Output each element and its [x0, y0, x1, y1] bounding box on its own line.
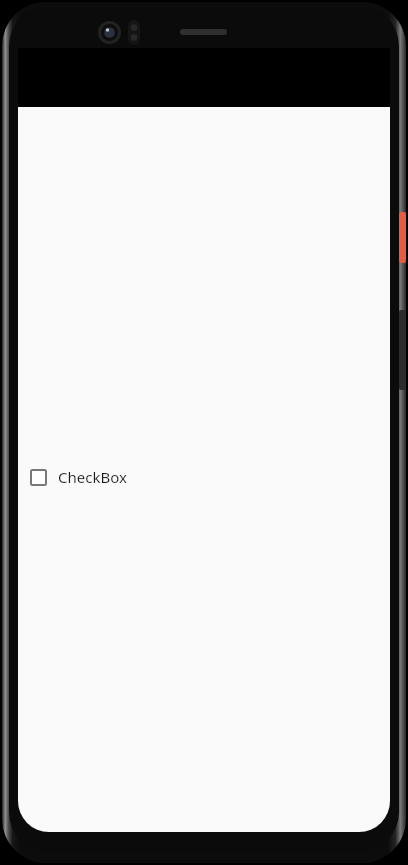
button[interactable]: CheckBox [18, 457, 141, 497]
staticText: CheckBox [58, 467, 127, 487]
